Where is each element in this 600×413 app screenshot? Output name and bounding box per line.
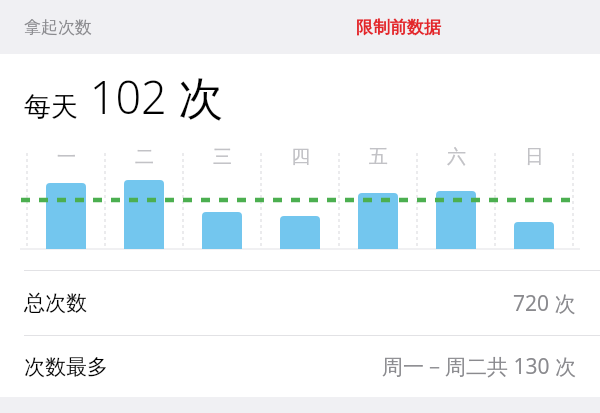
staticText: 总次数 (24, 290, 87, 316)
staticText: 周一－周二共 130 次 (382, 352, 576, 381)
staticText: 102 次 (78, 66, 224, 127)
staticText: 次数最多 (24, 354, 108, 380)
staticText: 每天 (24, 90, 78, 124)
staticText: 720 次 (513, 289, 576, 318)
button[interactable]: 次数最多 (0, 336, 600, 397)
button[interactable]: 总次数 (0, 271, 600, 335)
staticText: 三 (213, 145, 232, 169)
staticText: 拿起次数 (24, 17, 92, 38)
staticText: 四 (291, 145, 310, 169)
staticText: 一 (57, 145, 76, 169)
staticText: 日 (525, 145, 544, 169)
staticText: 二 (135, 145, 154, 169)
button[interactable]: 限制前数据 (356, 17, 441, 38)
staticText: 五 (369, 145, 388, 169)
staticText: 六 (447, 145, 466, 169)
